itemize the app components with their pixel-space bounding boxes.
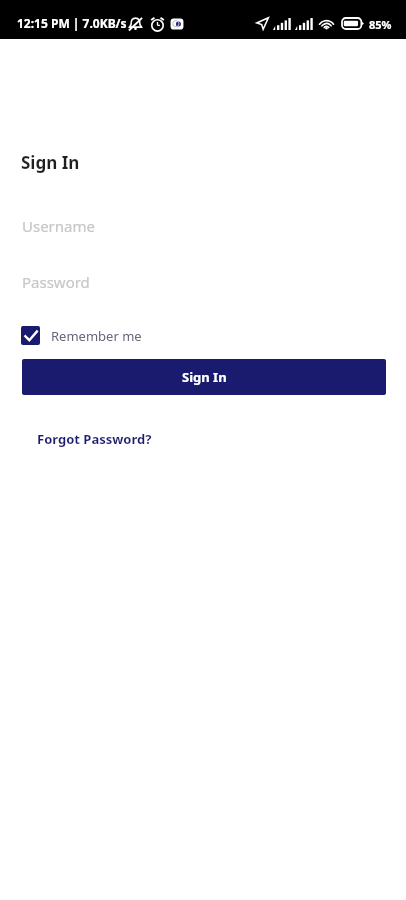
staticText: 12:15 PM | 7.0KB/s bbox=[17, 15, 127, 31]
staticText: Forgot Password? bbox=[37, 430, 152, 448]
staticText: Remember me bbox=[51, 327, 142, 345]
button[interactable]: Sign In bbox=[22, 359, 386, 395]
staticText: Username bbox=[22, 216, 95, 236]
button[interactable]: Password bbox=[0, 263, 406, 301]
button[interactable]: Username bbox=[0, 207, 406, 245]
other: Remember me checkbox, checked bbox=[21, 326, 40, 345]
button[interactable]: Forgot Password? bbox=[37, 430, 152, 448]
staticText: 85% bbox=[369, 17, 392, 32]
staticText: Password bbox=[22, 272, 90, 292]
staticText: Sign In bbox=[182, 368, 227, 386]
staticText: Sign In bbox=[21, 151, 80, 174]
button[interactable]: Remember me checkbox, checked bbox=[21, 326, 142, 345]
